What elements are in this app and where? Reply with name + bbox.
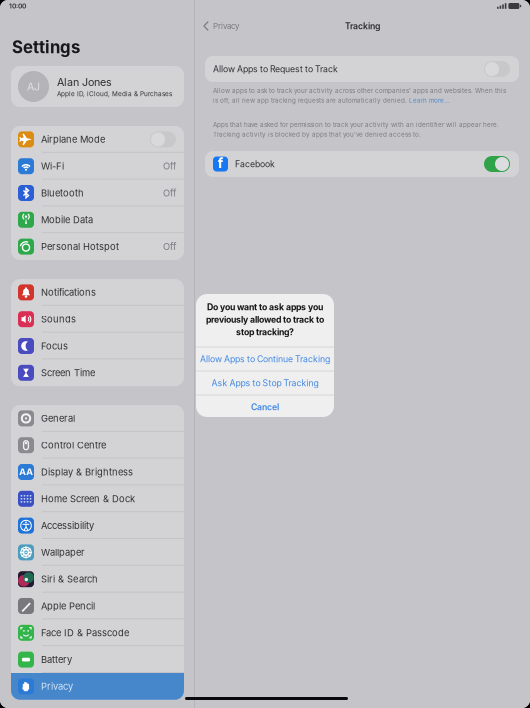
staticText: Wallpaper: [41, 547, 85, 558]
button[interactable]: Accessibility: [11, 512, 184, 539]
staticText: Notifications: [41, 287, 96, 298]
button[interactable]: Airplane Mode: [11, 126, 184, 153]
staticText: Cancel: [251, 402, 279, 412]
staticText: Home Screen & Dock: [41, 493, 135, 504]
staticText: Allow apps to ask to track your activity…: [213, 87, 506, 95]
staticText: Siri & Search: [41, 574, 98, 585]
staticText: Personal Hotspot: [41, 241, 119, 252]
button[interactable]: f: [205, 151, 519, 177]
button[interactable]: Home Screen & Dock: [11, 485, 184, 512]
staticText: Do you want to ask apps you: [207, 302, 323, 312]
staticText: Tracking: [345, 21, 380, 31]
button[interactable]: Privacy: [195, 15, 247, 37]
button[interactable]: Focus: [11, 333, 184, 359]
staticText: Bluetooth: [41, 187, 84, 199]
staticText: Settings: [12, 37, 80, 57]
staticText: Ask Apps to Stop Tracking: [211, 378, 318, 388]
staticText: Apps that have asked for permission to t…: [213, 121, 499, 129]
button[interactable]: Battery: [11, 646, 184, 673]
button[interactable]: Apple Pencil: [11, 593, 184, 619]
staticText: AJ: [27, 80, 40, 93]
staticText: Privacy: [213, 21, 239, 31]
button[interactable]: Notifications: [11, 279, 184, 306]
staticText: Allow Apps to Continue Tracking: [200, 354, 330, 364]
staticText: Airplane Mode: [41, 134, 105, 145]
button[interactable]: Mobile Data: [11, 206, 184, 233]
staticText: previously allowed to track to: [206, 314, 324, 325]
staticText: Apple ID, iCloud, Media & Purchases: [57, 90, 172, 98]
staticText: Mobile Data: [41, 214, 93, 225]
staticText: 10:00: [9, 2, 26, 10]
button[interactable]: Control Centre: [11, 432, 184, 459]
staticText: General: [41, 413, 75, 424]
staticText: Face ID & Passcode: [41, 627, 129, 638]
staticText: Display & Brightness: [41, 466, 133, 478]
staticText: Privacy: [41, 681, 73, 692]
staticText: Allow Apps to Request to Track: [213, 64, 338, 74]
button[interactable]: Siri & Search: [11, 566, 184, 593]
button[interactable]: Bluetooth: [11, 180, 184, 206]
staticText: Focus: [41, 340, 68, 352]
staticText: Facebook: [235, 159, 275, 169]
button[interactable]: Wi-Fi: [11, 153, 184, 180]
button[interactable]: AJ: [11, 66, 184, 107]
staticText: Alan Jones: [57, 75, 112, 88]
staticText: Off: [163, 241, 176, 252]
button[interactable]: Personal Hotspot: [11, 233, 184, 260]
button[interactable]: Screen Time: [11, 359, 184, 386]
button[interactable]: Wallpaper: [11, 539, 184, 566]
staticText: Sounds: [41, 314, 76, 325]
staticText: AA: [19, 466, 33, 478]
button[interactable]: Privacy: [11, 673, 184, 700]
staticText: Off: [163, 187, 176, 199]
staticText: Learn more...: [409, 97, 450, 104]
staticText: is off, all new app tracking requests ar…: [213, 97, 409, 104]
staticText: Apple Pencil: [41, 600, 95, 612]
staticText: f: [217, 154, 223, 172]
staticText: Control Centre: [41, 440, 106, 451]
button[interactable]: Ask Apps to Stop Tracking: [196, 371, 334, 394]
button[interactable]: Cancel: [196, 395, 334, 418]
staticText: Accessibility: [41, 520, 94, 531]
staticText: Battery: [41, 654, 72, 665]
button[interactable]: Allow Apps to Continue Tracking: [196, 347, 334, 370]
staticText: stop tracking?: [236, 327, 294, 337]
staticText: Off: [163, 161, 176, 172]
button[interactable]: AA: [11, 459, 184, 485]
button[interactable]: General: [11, 405, 184, 432]
button[interactable]: Sounds: [11, 306, 184, 333]
staticText: Screen Time: [41, 367, 95, 378]
button[interactable]: Face ID & Passcode: [11, 619, 184, 646]
staticText: Tracking activity is blocked by apps tha…: [213, 131, 421, 138]
staticText: Wi-Fi: [41, 161, 64, 172]
